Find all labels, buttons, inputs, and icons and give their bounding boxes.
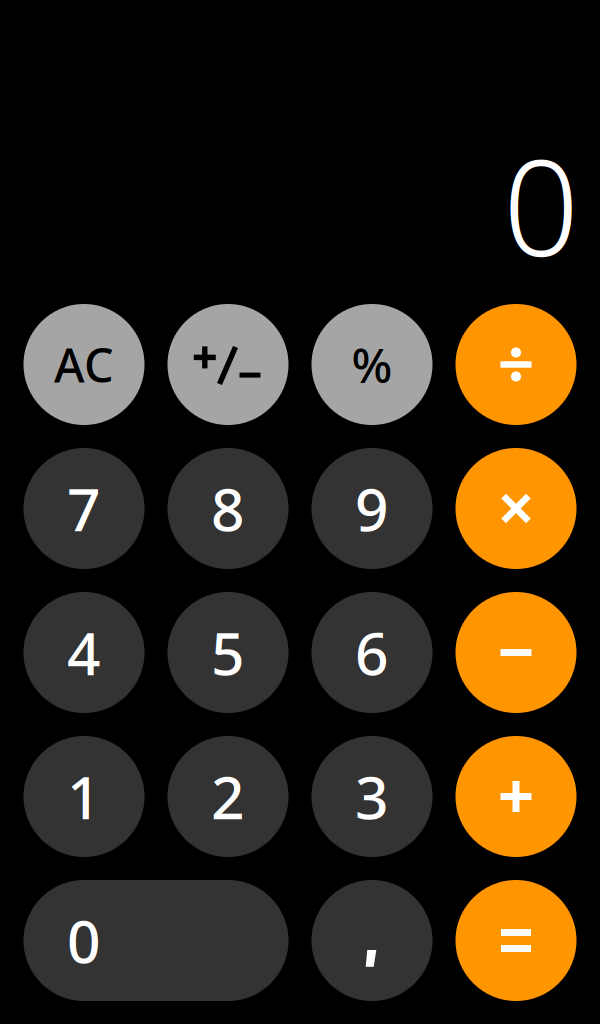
staticText: 2 (211, 757, 245, 835)
button[interactable]: Multiply (455, 448, 576, 569)
button[interactable]: 3 (311, 736, 432, 857)
button[interactable]: Plus (455, 736, 576, 857)
staticText: 0 (503, 116, 579, 293)
staticText: 8 (211, 469, 245, 547)
staticText: 4 (67, 613, 101, 691)
staticText: 9 (355, 469, 389, 547)
button[interactable]: % (311, 304, 432, 425)
staticText: % (351, 333, 392, 396)
staticText: 1 (67, 757, 101, 835)
button[interactable]: Plus minus (167, 304, 288, 425)
button[interactable]: Decimal separator (311, 880, 432, 1001)
button[interactable]: 7 (23, 448, 144, 569)
button[interactable]: 8 (167, 448, 288, 569)
staticText: AC (54, 333, 114, 395)
button[interactable]: 5 (167, 592, 288, 713)
button[interactable]: 6 (311, 592, 432, 713)
button[interactable]: Divide (455, 304, 576, 425)
staticText: 5 (211, 613, 245, 691)
button[interactable]: 0 (23, 880, 288, 1001)
staticText: 3 (355, 757, 389, 835)
button[interactable]: 2 (167, 736, 288, 857)
button[interactable]: 9 (311, 448, 432, 569)
button[interactable]: 4 (23, 592, 144, 713)
button[interactable]: Minus (455, 592, 576, 713)
staticText: 7 (67, 469, 101, 547)
staticText: 0 (67, 901, 101, 979)
button[interactable]: Equals (455, 880, 576, 1001)
button[interactable]: 1 (23, 736, 144, 857)
button[interactable]: AC (23, 304, 144, 425)
staticText: 6 (355, 613, 389, 691)
